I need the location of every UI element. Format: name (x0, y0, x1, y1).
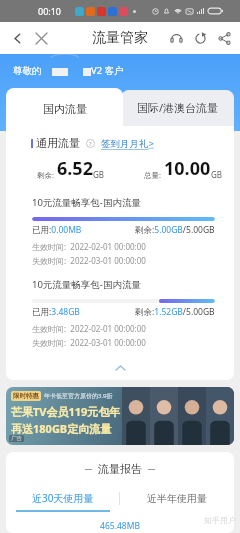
staticText: 6.52 (57, 156, 93, 181)
button[interactable]: Collapse (6, 361, 234, 375)
staticText: 芒果TV会员119元包年 (11, 404, 121, 419)
staticText: ? (89, 140, 92, 148)
staticText: 国际/港澳台流量 (137, 100, 219, 115)
staticText: 生效时间: 2022-02-01 00:00:00 (32, 241, 146, 252)
staticText: 00:10 (38, 5, 62, 17)
staticText: 10元流量畅享包-国内流量 (32, 196, 141, 209)
button[interactable]: 签到月月礼> (101, 137, 154, 150)
button[interactable]: 10元流量畅享包-国内流量 (32, 278, 215, 348)
button[interactable]: 近30天使用量 (6, 486, 119, 510)
staticText: 生效时间: 2022-02-01 00:00:00 (32, 323, 146, 334)
staticText: 失效时间: 2022-03-01 00:00:00 (32, 255, 146, 266)
staticText: 10元流量畅享包-国内流量 (32, 278, 141, 291)
staticText: 剩余: (37, 170, 55, 180)
button[interactable]: 国际/港澳台流量 (121, 90, 234, 126)
staticText: 广告 (11, 435, 22, 442)
staticText: 限时特惠 (13, 392, 39, 400)
button[interactable]: 近半年使用量 (120, 486, 234, 510)
staticText: 流量管家 (92, 29, 148, 47)
staticText: V2 客户 (91, 64, 124, 77)
staticText: 已用:3.48GB (32, 306, 80, 318)
staticText: 再送180GB定向流量 (11, 421, 112, 436)
staticText: 剩余:5.00GB/5.00GB (135, 224, 215, 236)
staticText: 国内流量 (43, 102, 87, 116)
staticText: 10.00 (164, 156, 211, 181)
staticText: 年卡低至官方原价的3.9折 (44, 392, 113, 400)
staticText: 剩余:1.52GB/5.00GB (135, 306, 215, 318)
staticText: 总量: (144, 170, 162, 180)
staticText: 已用:0.00MB (32, 224, 82, 236)
button[interactable]: 国内流量 (6, 88, 123, 131)
staticText: 近半年使用量 (147, 492, 207, 505)
staticText: 流量报告 (98, 462, 142, 476)
staticText: GB (211, 169, 223, 180)
button[interactable]: Refresh (190, 28, 210, 48)
staticText: GB (93, 169, 105, 180)
button[interactable]: 限时特惠 (6, 387, 234, 445)
staticText: 知乎用户 (204, 515, 236, 525)
staticText: 失效时间: 2022-03-01 00:00:00 (32, 337, 146, 348)
staticText: 签到月月礼> (101, 137, 154, 150)
button[interactable]: Customer service (166, 28, 186, 48)
staticText: 近30天使用量 (32, 491, 94, 505)
button[interactable]: Back (6, 27, 28, 49)
staticText: 尊敬的 (13, 65, 42, 77)
button[interactable]: Help (85, 138, 96, 149)
button[interactable]: Share (214, 28, 234, 48)
staticText: 465.48MB (6, 520, 234, 532)
button[interactable]: 10元流量畅享包-国内流量 (32, 196, 215, 266)
staticText: 通用流量 (36, 136, 80, 150)
button[interactable]: Close (30, 27, 52, 49)
